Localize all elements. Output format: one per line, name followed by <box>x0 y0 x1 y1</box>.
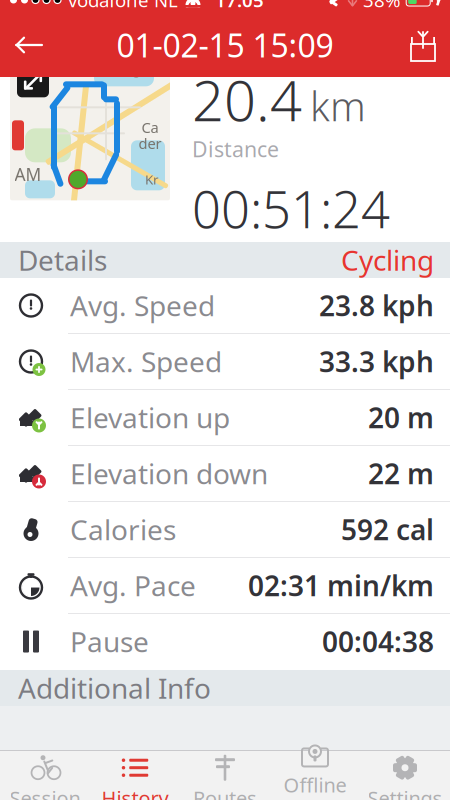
button[interactable]: Avg. Pace <box>0 558 450 614</box>
staticText: Settings <box>367 785 442 800</box>
staticText: km <box>310 79 366 132</box>
staticText: Distance <box>192 135 279 163</box>
staticText: Details <box>18 241 107 279</box>
button[interactable]: Calories <box>0 502 450 558</box>
button[interactable]: Avg. Speed <box>0 278 450 334</box>
staticText: 20 m <box>368 399 434 436</box>
staticText: 23.8 kph <box>319 287 434 324</box>
button[interactable]: Offline Map <box>270 751 360 800</box>
staticText: 38% <box>363 0 401 12</box>
button[interactable]: Share <box>396 19 450 71</box>
staticText: der <box>138 134 161 153</box>
staticText: Offline Map <box>283 771 346 800</box>
staticText: History <box>101 785 168 800</box>
button[interactable]: Expand map <box>17 65 49 97</box>
button[interactable]: Back <box>0 20 58 70</box>
staticText: 00:51:24 <box>192 175 390 242</box>
staticText: Session <box>9 785 80 800</box>
staticText: 02:31 min/km <box>248 567 434 604</box>
button[interactable]: History <box>90 751 180 800</box>
staticText: 22 m <box>368 455 434 492</box>
staticText: Calories <box>70 511 176 548</box>
staticText: AM <box>14 163 41 186</box>
staticText: Pause <box>70 623 149 660</box>
staticText: Additional Info <box>18 669 211 707</box>
staticText: Legal <box>117 60 150 78</box>
staticText: Cycling <box>341 241 434 279</box>
button[interactable]: Session <box>0 751 90 800</box>
button[interactable]: Routes <box>180 751 270 800</box>
button[interactable]: Elevation up <box>0 390 450 446</box>
staticText: Avg. Pace <box>70 567 196 604</box>
staticText: Duration <box>192 240 281 269</box>
button[interactable]: Settings <box>360 751 450 800</box>
staticText: 20.4 <box>192 62 302 137</box>
staticText: Elevation down <box>70 455 268 492</box>
staticText: 01-02-15 15:09 <box>116 24 333 66</box>
staticText: Kr <box>145 170 159 188</box>
staticText: vodafone NL <box>68 0 178 12</box>
staticText: Avg. Speed <box>70 287 215 324</box>
staticText: Ca <box>141 118 158 137</box>
staticText: 00:04:38 <box>322 623 434 660</box>
button[interactable]: Max. Speed <box>0 334 450 390</box>
button[interactable]: Elevation down <box>0 446 450 502</box>
staticText: Routes <box>193 785 257 800</box>
staticText: 17:05 <box>215 0 264 12</box>
staticText: Elevation up <box>70 399 230 436</box>
button[interactable]: Pause <box>0 614 450 670</box>
staticText: 592 cal <box>341 511 434 548</box>
staticText: Max. Speed <box>70 343 222 380</box>
staticText: 33.3 kph <box>319 343 434 380</box>
